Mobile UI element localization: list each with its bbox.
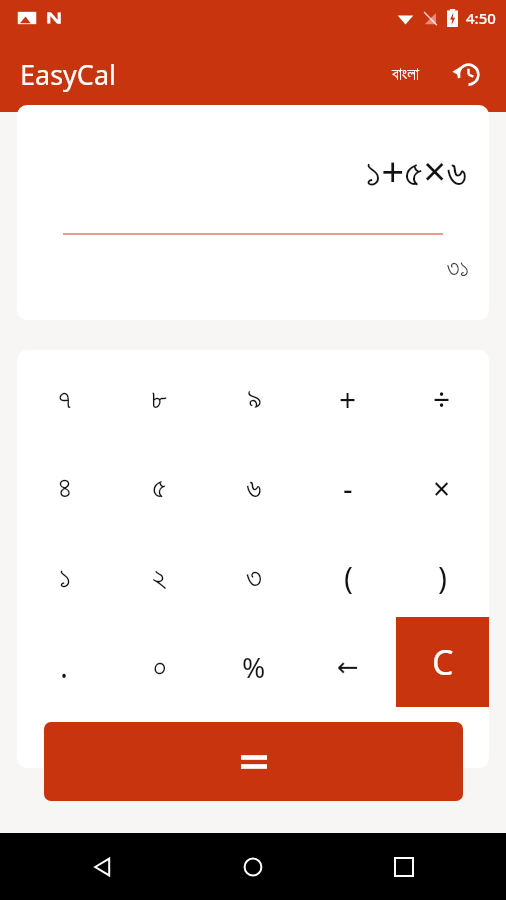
staticText: বাংলা: [392, 66, 420, 83]
button[interactable]: ×: [395, 444, 489, 533]
button[interactable]: ৯: [207, 355, 301, 444]
button[interactable]: .: [17, 622, 112, 711]
staticText: ৪: [58, 474, 72, 504]
button[interactable]: ২: [112, 533, 207, 622]
staticText: ×: [433, 468, 451, 509]
staticText: C: [432, 639, 454, 685]
button[interactable]: C: [396, 617, 489, 707]
staticText: ৭: [58, 385, 72, 415]
staticText: ১: [59, 563, 71, 593]
staticText: %: [242, 648, 266, 686]
button[interactable]: ৬: [207, 444, 301, 533]
button[interactable]: ৫: [112, 444, 207, 533]
staticText: 4:50: [466, 8, 496, 28]
staticText: ): [438, 557, 447, 598]
staticText: (: [344, 557, 353, 598]
button[interactable]: %: [207, 622, 301, 711]
button[interactable]: ←: [301, 622, 395, 711]
staticText: ÷: [433, 379, 451, 420]
button[interactable]: History: [444, 51, 490, 97]
button[interactable]: (: [301, 533, 395, 622]
staticText: .: [60, 646, 69, 687]
staticText: ৫: [152, 474, 167, 504]
staticText: ৩১: [446, 257, 469, 281]
button[interactable]: -: [301, 444, 395, 533]
button[interactable]: ১: [17, 533, 112, 622]
button[interactable]: ৭: [17, 355, 112, 444]
button[interactable]: ৩: [207, 533, 301, 622]
button[interactable]: Equals: [44, 722, 463, 801]
button[interactable]: বাংলা: [386, 60, 426, 89]
staticText: ←: [337, 652, 359, 682]
staticText: ১+৫×৬: [365, 143, 467, 197]
button[interactable]: ৪: [17, 444, 112, 533]
staticText: -: [343, 468, 353, 509]
staticText: +: [339, 379, 357, 420]
button[interactable]: Back: [80, 845, 124, 889]
button[interactable]: +: [301, 355, 395, 444]
staticText: ০: [153, 652, 167, 682]
button[interactable]: Home: [231, 845, 275, 889]
button[interactable]: ÷: [395, 355, 489, 444]
staticText: EasyCal: [20, 56, 117, 93]
staticText: ৮: [151, 385, 168, 415]
staticText: ৬: [246, 474, 262, 504]
button[interactable]: ৮: [112, 355, 207, 444]
staticText: ২: [152, 563, 167, 593]
button[interactable]: Recents: [382, 845, 426, 889]
staticText: ৯: [247, 385, 262, 415]
button[interactable]: ০: [112, 622, 207, 711]
staticText: ৩: [246, 563, 262, 593]
button[interactable]: ): [395, 533, 489, 622]
